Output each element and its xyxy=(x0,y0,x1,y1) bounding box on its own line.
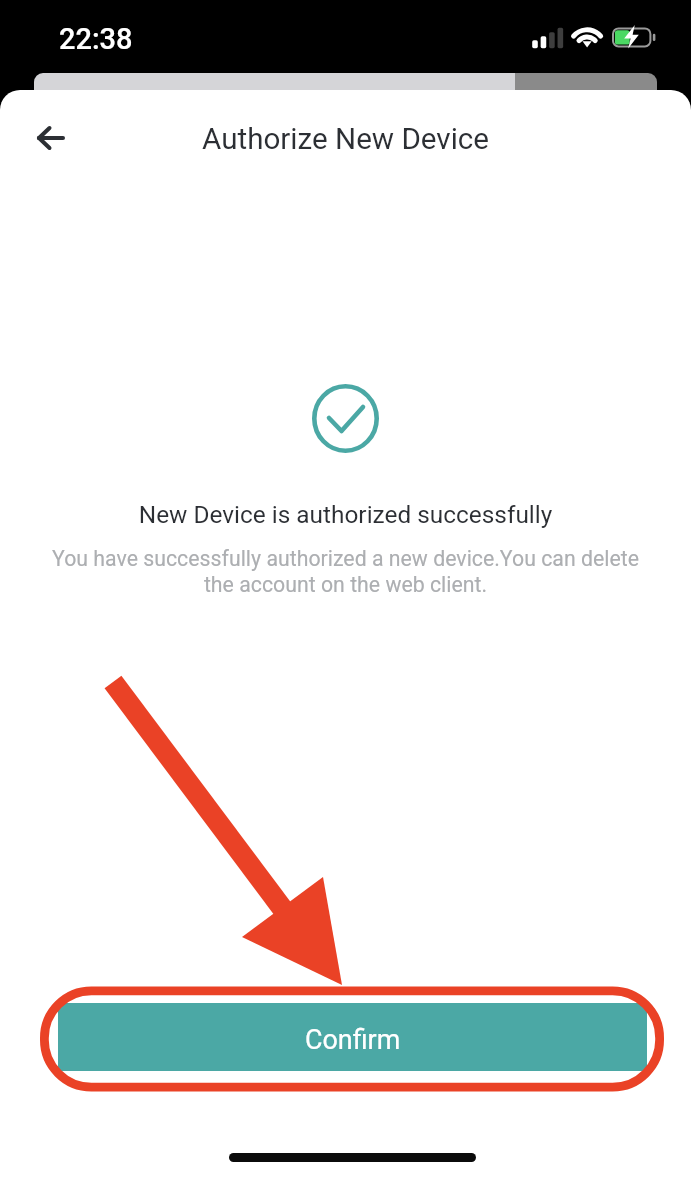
button[interactable]: Back xyxy=(23,110,79,166)
staticText: Authorize New Device xyxy=(202,122,490,157)
staticText: Confirm xyxy=(305,1024,401,1056)
staticText: You have successfully authorized a new d… xyxy=(48,546,643,598)
staticText: 22:38 xyxy=(59,22,133,56)
button[interactable]: Confirm xyxy=(58,1003,647,1071)
staticText: New Device is authorized successfully xyxy=(0,500,691,529)
